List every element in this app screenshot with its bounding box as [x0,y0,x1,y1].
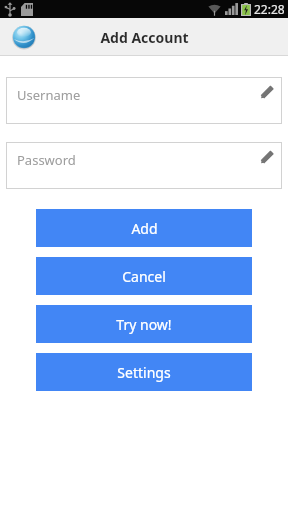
staticText: Password [17,151,76,169]
staticText: Try now! [116,315,172,334]
button[interactable]: Settings [36,353,252,391]
other: App icon [10,23,38,51]
staticText: Username [17,86,81,104]
button[interactable]: Password [6,142,282,189]
button[interactable]: Username [6,77,282,124]
button[interactable]: Add [36,209,252,247]
button[interactable]: Try now! [36,305,252,343]
staticText: 22:28 [254,1,285,17]
staticText: Add [131,219,158,238]
button[interactable]: Cancel [36,257,252,295]
staticText: Add Account [100,28,189,47]
staticText: Cancel [122,267,166,286]
staticText: Settings [117,363,171,382]
